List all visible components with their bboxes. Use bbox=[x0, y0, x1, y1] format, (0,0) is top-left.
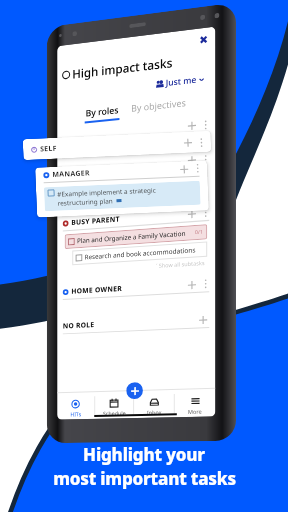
staticText: By roles bbox=[86, 103, 119, 118]
button[interactable]: Add bbox=[126, 382, 143, 399]
button[interactable]: NO ROLE bbox=[63, 312, 207, 333]
button[interactable]: Plan and Organize a Family Vacation bbox=[68, 227, 203, 246]
button[interactable] bbox=[57, 152, 207, 179]
staticText: More bbox=[188, 408, 202, 415]
staticText: restructuring plan bbox=[57, 196, 114, 208]
button[interactable]: BUSY PARENT bbox=[63, 205, 207, 230]
staticText: ˅ Show all subtasks bbox=[156, 259, 205, 269]
button[interactable]: By roles bbox=[85, 103, 119, 124]
button[interactable]: SELF bbox=[23, 131, 211, 160]
button[interactable]: Schedule bbox=[95, 393, 133, 417]
staticText: NO ROLE bbox=[63, 320, 95, 331]
staticText: HITs bbox=[70, 410, 82, 417]
staticText: HOME OWNER bbox=[71, 284, 122, 297]
staticText: Highlight your bbox=[83, 443, 205, 466]
staticText: most important tasks bbox=[53, 467, 236, 490]
staticText: By objectives bbox=[131, 96, 187, 114]
button[interactable]: HITs bbox=[57, 394, 94, 418]
staticText: SELF bbox=[40, 144, 57, 154]
button[interactable]: More bbox=[175, 391, 215, 415]
staticText: Plan and Organize a Family Vacation bbox=[77, 229, 186, 245]
button[interactable]: Inbox bbox=[134, 392, 174, 416]
staticText: MANAGER bbox=[52, 168, 90, 180]
button[interactable] bbox=[57, 117, 207, 146]
button[interactable]: MANAGER bbox=[35, 160, 209, 218]
staticText: #Example implement a strategic bbox=[57, 186, 156, 199]
staticText: Just me bbox=[166, 73, 197, 89]
staticText: 0/1 bbox=[195, 228, 203, 236]
button[interactable]: Research and book accommodations bbox=[76, 245, 203, 262]
staticText: BUSY PARENT bbox=[71, 214, 120, 228]
button[interactable]: HOME OWNER bbox=[63, 276, 207, 299]
button[interactable]: By objectives bbox=[131, 96, 187, 114]
staticText: Research and book accommodations bbox=[85, 245, 196, 261]
button[interactable]: Close bbox=[199, 34, 208, 45]
staticText: Schedule bbox=[103, 409, 126, 417]
staticText: Inbox bbox=[147, 408, 162, 416]
staticText: High impact tasks bbox=[72, 54, 173, 82]
